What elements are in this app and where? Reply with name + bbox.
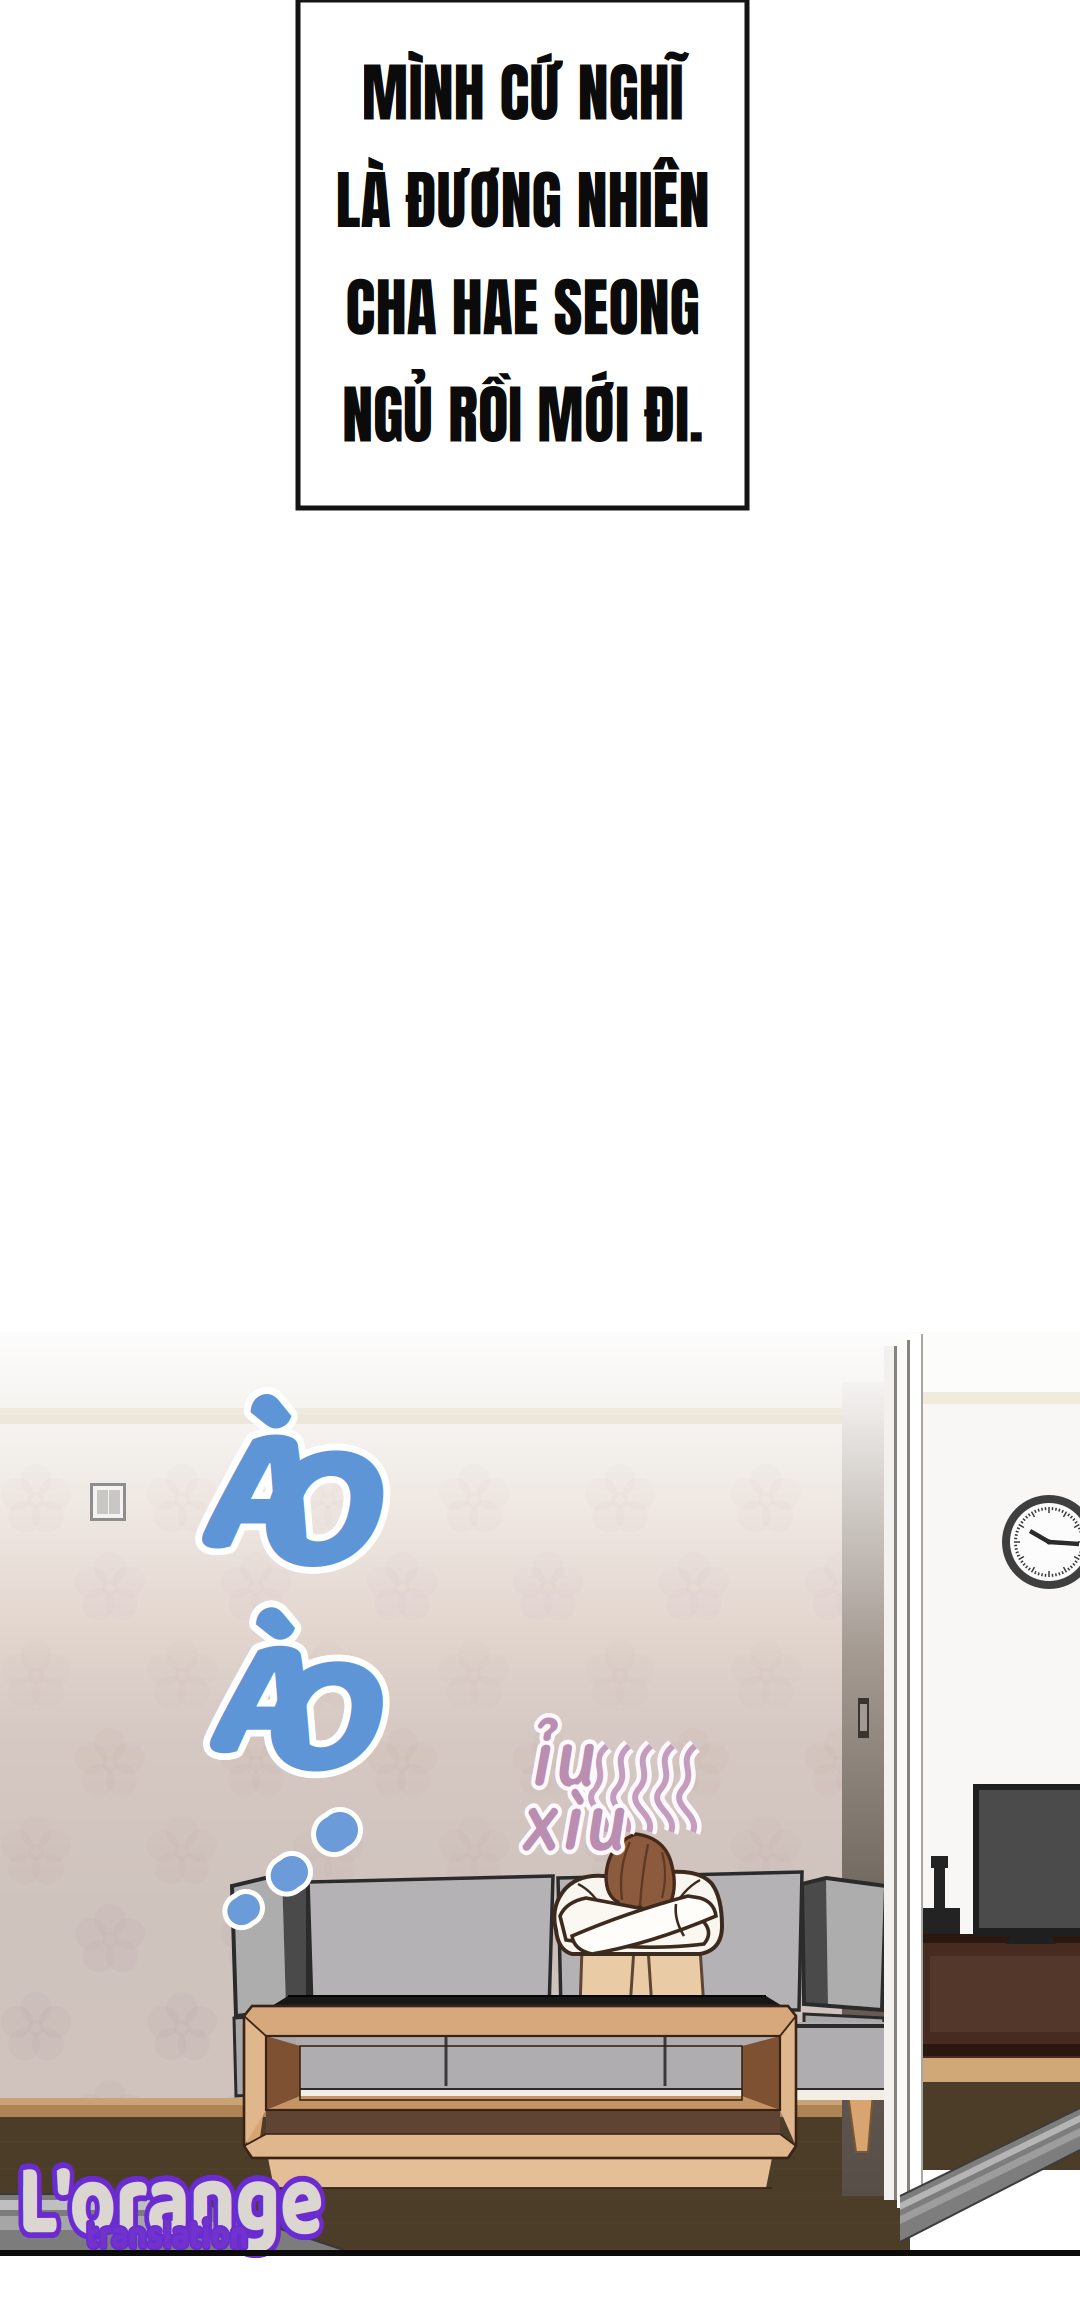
staticText: À <box>210 1560 352 1923</box>
staticText: ỉu <box>530 1700 612 1818</box>
staticText: O <box>267 1366 434 1746</box>
staticText: xìu <box>519 1768 648 1886</box>
staticText: L'orange <box>19 2117 411 2279</box>
staticText: O <box>274 1369 441 1749</box>
staticText: À <box>207 1558 349 1921</box>
staticText: À <box>196 1569 338 1932</box>
staticText: O <box>271 1383 438 1764</box>
staticText: L'orange <box>13 2120 405 2283</box>
staticText: O <box>267 1384 434 1764</box>
staticText: O <box>280 1585 439 1948</box>
staticText: xìu <box>522 1764 651 1882</box>
staticText: O <box>264 1585 423 1948</box>
staticText: ỉu <box>526 1697 608 1815</box>
staticText: translation <box>84 2202 292 2268</box>
staticText: O <box>274 1381 441 1762</box>
staticText: L'orange <box>22 2128 414 2290</box>
staticText: ỉu <box>532 1696 614 1814</box>
staticText: À <box>201 1558 343 1921</box>
staticText: ỉu <box>530 1695 612 1813</box>
staticText: MÌNH CỨ NGHĨ <box>361 46 683 140</box>
staticText: L'orange <box>24 2123 416 2285</box>
staticText: ỉu <box>526 1702 608 1820</box>
staticText: O <box>269 1596 428 1959</box>
staticText: À <box>199 1360 348 1740</box>
staticText: translation <box>88 2203 296 2269</box>
staticText: O <box>275 1596 434 1959</box>
staticText: À <box>196 1343 345 1723</box>
staticText: O <box>261 1381 428 1762</box>
staticText: xìu <box>524 1760 653 1878</box>
staticText: O <box>264 1367 431 1747</box>
staticText: O <box>281 1588 440 1951</box>
staticText: O <box>263 1588 422 1951</box>
staticText: ỉu <box>525 1700 607 1818</box>
staticText: À <box>199 1344 348 1724</box>
staticText: À <box>198 1560 340 1923</box>
staticText: À <box>204 1566 346 1929</box>
staticText: O <box>272 1597 431 1960</box>
staticText: L'orange <box>23 2126 415 2288</box>
staticText: O <box>272 1588 431 1951</box>
staticText: À <box>193 1360 342 1740</box>
staticText: À <box>188 1355 337 1736</box>
staticText: L'orange <box>19 2129 411 2291</box>
staticText: À <box>202 1346 351 1726</box>
staticText: À <box>207 1574 349 1937</box>
staticText: O <box>267 1375 434 1755</box>
staticText: O <box>266 1582 425 1945</box>
staticText: À <box>201 1574 343 1937</box>
staticText: L'orange <box>22 2118 414 2281</box>
staticText: xìu <box>519 1760 648 1878</box>
staticText: O <box>266 1594 425 1958</box>
staticText: À <box>204 1557 346 1920</box>
staticText: À <box>212 1563 354 1926</box>
staticText: L'orange <box>12 2123 404 2285</box>
staticText: translation <box>88 2202 296 2268</box>
staticText: À <box>210 1572 352 1935</box>
staticText: À <box>195 1566 337 1929</box>
staticText: L'orange <box>17 2117 409 2279</box>
staticText: translation <box>88 2204 296 2270</box>
staticText: À <box>190 1358 339 1739</box>
staticText: O <box>275 1372 442 1752</box>
staticText: O <box>264 1591 423 1955</box>
staticText: L'orange <box>23 2120 415 2283</box>
staticText: L'orange <box>14 2128 406 2290</box>
staticText: translation <box>87 2201 295 2267</box>
staticText: xìu <box>527 1764 656 1882</box>
staticText: ỉu <box>527 1696 609 1814</box>
staticText: ỉu <box>535 1700 617 1818</box>
staticText: À <box>213 1566 355 1929</box>
staticText: À <box>196 1361 345 1741</box>
staticText: L'orange <box>14 2118 406 2281</box>
staticText: ỉu <box>532 1704 614 1822</box>
staticText: O <box>271 1367 438 1747</box>
staticText: À <box>193 1344 342 1724</box>
staticText: O <box>275 1379 442 1759</box>
staticText: L'orange <box>18 2123 410 2285</box>
staticText: xìu <box>522 1769 651 1887</box>
staticText: O <box>272 1579 431 1942</box>
staticText: translation <box>86 2203 294 2269</box>
staticText: xìu <box>524 1768 653 1886</box>
staticText: O <box>278 1594 437 1958</box>
staticText: À <box>190 1346 339 1726</box>
staticText: À <box>202 1358 351 1739</box>
staticText: translation <box>85 2201 293 2267</box>
staticText: ỉu <box>534 1702 616 1820</box>
staticText: À <box>204 1575 346 1938</box>
staticText: O <box>276 1375 443 1755</box>
staticText: translation <box>84 2204 292 2270</box>
staticText: xìu <box>526 1766 655 1884</box>
staticText: NGỦ RỒI MỚI ĐI. <box>342 368 703 462</box>
staticText: LÀ ĐƯƠNG NHIÊN <box>335 153 709 247</box>
staticText: xìu <box>518 1766 647 1884</box>
staticText: O <box>264 1383 431 1764</box>
staticText: xìu <box>518 1761 647 1879</box>
staticText: ỉu <box>530 1705 612 1823</box>
staticText: translation <box>85 2205 293 2271</box>
staticText: O <box>259 1379 426 1759</box>
staticText: xìu <box>526 1761 655 1879</box>
staticText: ỉu <box>527 1704 609 1822</box>
